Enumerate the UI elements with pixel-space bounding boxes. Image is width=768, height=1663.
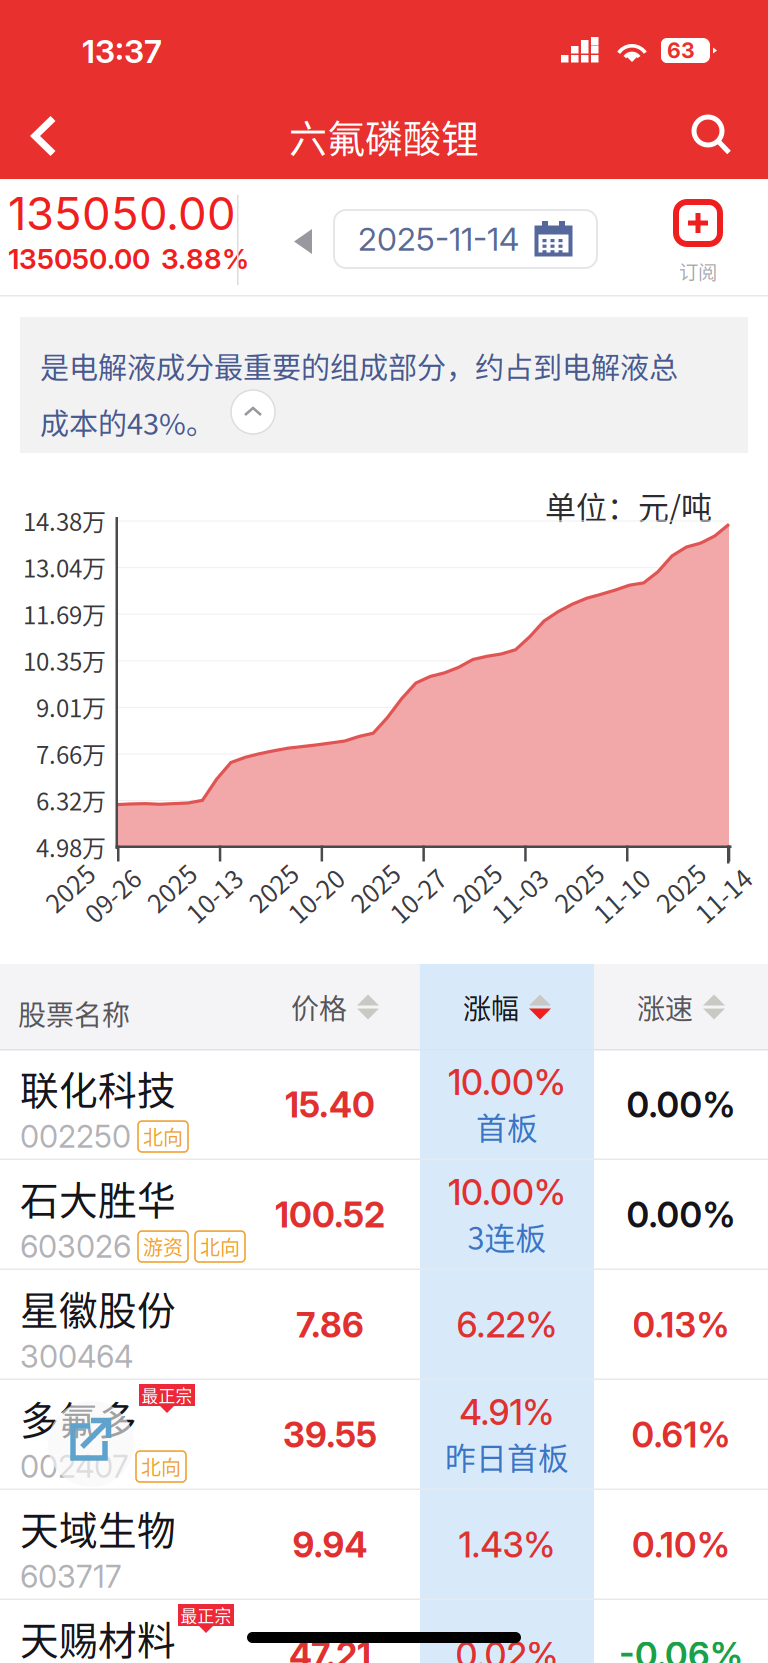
staticText: 2025 <box>663 862 719 898</box>
button[interactable]: 天域生物 <box>0 1490 768 1600</box>
staticText: 是电解液成分最重要的组成部分，约占到电解液总 <box>40 345 678 387</box>
staticText: 2025 <box>52 862 108 898</box>
staticText: 7.86 <box>296 1304 364 1346</box>
staticText: 2025 <box>154 862 210 898</box>
staticText: 11-03 <box>481 896 546 933</box>
staticText: 10.00% <box>448 1061 566 1103</box>
staticText: 最正宗 <box>141 1383 192 1407</box>
button[interactable]: Previous day <box>278 213 328 270</box>
button[interactable]: Share <box>48 1401 134 1487</box>
staticText: 首板 <box>476 1104 538 1149</box>
staticText: 11.69万 <box>23 596 106 631</box>
button[interactable]: 星徽股份 <box>0 1270 768 1380</box>
staticText: 2025-11-14 <box>358 220 519 258</box>
staticText: 单位：元/吨 <box>545 483 712 528</box>
staticText: 订阅 <box>679 257 717 285</box>
staticText: 0.02% <box>455 1634 558 1663</box>
staticText: 3.88% <box>161 242 249 276</box>
staticText: 0.10% <box>632 1524 730 1566</box>
staticText: 联化科技 <box>20 1060 176 1116</box>
staticText: 2025 <box>459 862 515 898</box>
staticText: 13:37 <box>82 32 162 71</box>
staticText: 603717 <box>20 1558 122 1595</box>
staticText: 100.52 <box>275 1194 385 1236</box>
button[interactable]: 联化科技 <box>0 1050 768 1160</box>
staticText: 2025 <box>357 862 413 898</box>
staticText: 63 <box>667 38 695 63</box>
staticText: 10.35万 <box>23 643 106 678</box>
staticText: 10-20 <box>278 896 343 933</box>
staticText: 六氟磷酸锂 <box>289 108 479 163</box>
staticText: 9.94 <box>292 1524 367 1566</box>
staticText: 11-14 <box>685 896 750 933</box>
staticText: 10-27 <box>379 896 444 933</box>
staticText: 北向 <box>143 1122 183 1151</box>
staticText: 价格 <box>291 987 347 1027</box>
staticText: 6.22% <box>456 1304 557 1346</box>
staticText: -0.06% <box>619 1634 743 1663</box>
staticText: 天赐材料 <box>20 1610 176 1663</box>
button[interactable]: 涨速 <box>594 964 768 1050</box>
staticText: 昨日首板 <box>445 1434 569 1479</box>
staticText: 星徽股份 <box>20 1280 176 1336</box>
button[interactable]: Collapse <box>231 390 275 434</box>
staticText: 47.21 <box>289 1634 371 1663</box>
staticText: 13.04万 <box>23 550 106 584</box>
staticText: 北向 <box>200 1232 240 1261</box>
staticText: 3连板 <box>467 1214 546 1259</box>
button[interactable]: 石大胜华 <box>0 1160 768 1270</box>
staticText: 2025 <box>561 862 617 898</box>
staticText: 4.91% <box>459 1391 554 1433</box>
button[interactable]: 多氟多 <box>0 1380 768 1490</box>
staticText: 603026 <box>20 1228 131 1265</box>
staticText: 成本的43%。 <box>40 401 215 443</box>
staticText: 股票名称 <box>18 993 130 1033</box>
staticText: 09-26 <box>74 896 139 933</box>
staticText: 39.55 <box>283 1414 377 1456</box>
staticText: 多氟多 <box>20 1390 137 1446</box>
button[interactable]: 价格 <box>250 964 420 1050</box>
staticText: 9.01万 <box>36 689 106 724</box>
button[interactable]: 订阅 <box>676 202 720 285</box>
staticText: 涨速 <box>637 987 693 1027</box>
staticText: 135050.00 <box>8 186 236 241</box>
staticText: 10-13 <box>176 896 241 933</box>
staticText: 6.32万 <box>36 783 106 817</box>
staticText: 10.00% <box>448 1171 566 1213</box>
staticText: 0.00% <box>626 1084 735 1126</box>
staticText: 涨幅 <box>463 987 519 1027</box>
button[interactable]: Search <box>672 99 752 171</box>
staticText: 最正宗 <box>180 1603 231 1627</box>
staticText: 游资 <box>143 1232 183 1261</box>
staticText: 135050.00 <box>8 242 150 276</box>
staticText: 北向 <box>141 1452 181 1481</box>
staticText: 15.40 <box>285 1084 375 1126</box>
staticText: 0.00% <box>626 1194 735 1236</box>
staticText: 天域生物 <box>20 1500 176 1556</box>
button[interactable]: 涨幅 <box>420 964 594 1050</box>
button[interactable]: 天赐材料 <box>0 1600 768 1663</box>
staticText: 002407 <box>20 1448 129 1485</box>
staticText: 0.61% <box>631 1414 730 1456</box>
button[interactable]: 2025-11-14 <box>334 210 597 268</box>
staticText: 4.98万 <box>36 829 106 864</box>
staticText: 石大胜华 <box>20 1170 176 1226</box>
staticText: 2025 <box>256 862 312 898</box>
staticText: 14.38万 <box>23 503 106 538</box>
button[interactable]: Back <box>4 100 84 172</box>
staticText: 002250 <box>20 1118 131 1155</box>
staticText: 11-10 <box>583 896 648 933</box>
staticText: 0.13% <box>632 1304 729 1346</box>
staticText: 1.43% <box>458 1524 555 1566</box>
staticText: 300464 <box>20 1338 133 1375</box>
staticText: 7.66万 <box>36 736 106 771</box>
